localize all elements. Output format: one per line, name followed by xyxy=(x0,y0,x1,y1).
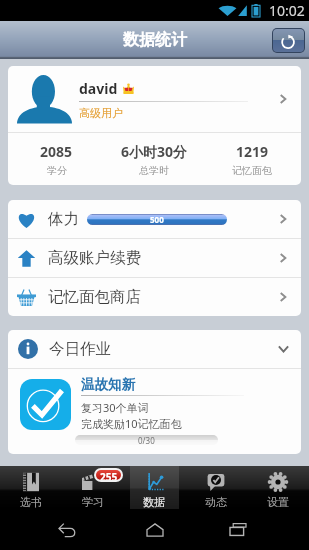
staticText: 高级用户 xyxy=(79,106,123,120)
staticText: 数据统计 xyxy=(123,30,187,50)
staticText: 温故知新 xyxy=(81,376,135,393)
button[interactable]: 体力 xyxy=(8,200,301,238)
staticText: 总学时 xyxy=(139,164,169,177)
staticText: 学习 xyxy=(82,495,104,509)
button[interactable]: 记忆面包商店 xyxy=(8,278,301,316)
staticText: 今日作业 xyxy=(49,339,111,359)
staticText: david xyxy=(79,79,118,98)
staticText: 动态 xyxy=(205,495,227,509)
button[interactable]: Refresh xyxy=(273,29,304,52)
staticText: 记忆面包商店 xyxy=(48,287,141,307)
staticText: 255 xyxy=(100,470,118,480)
button[interactable]: Recent apps xyxy=(223,515,253,545)
staticText: 6小时30分 xyxy=(121,142,188,161)
staticText: 10:02 xyxy=(269,1,305,20)
staticText: 选书 xyxy=(20,495,42,509)
staticText: 1219 xyxy=(236,142,269,161)
staticText: 完成奖励10记忆面包 xyxy=(81,416,182,431)
staticText: 0/30 xyxy=(138,435,155,445)
staticText: 复习30个单词 xyxy=(81,400,149,415)
button[interactable]: Home xyxy=(140,515,170,545)
button[interactable]: 高级账户续费 xyxy=(8,239,301,277)
button[interactable]: 今日作业 xyxy=(8,330,301,368)
button[interactable]: 255 xyxy=(61,466,123,509)
staticText: 2085 xyxy=(40,142,73,161)
button[interactable]: 选书 xyxy=(0,466,61,509)
staticText: 记忆面包 xyxy=(232,164,272,177)
button[interactable]: 数据 xyxy=(123,466,185,509)
staticText: 500 xyxy=(150,214,164,225)
staticText: 体力 xyxy=(48,209,79,229)
button[interactable]: 设置 xyxy=(247,466,309,509)
staticText: 高级账户续费 xyxy=(48,248,141,268)
button[interactable]: 动态 xyxy=(185,466,247,509)
staticText: 设置 xyxy=(267,495,289,509)
button[interactable]: 温故知新 xyxy=(8,369,301,454)
button[interactable]: david xyxy=(8,66,301,132)
staticText: 学分 xyxy=(47,164,67,177)
staticText: 数据 xyxy=(143,495,165,509)
button[interactable]: Collapse xyxy=(278,345,289,353)
button[interactable]: Back xyxy=(52,515,82,545)
